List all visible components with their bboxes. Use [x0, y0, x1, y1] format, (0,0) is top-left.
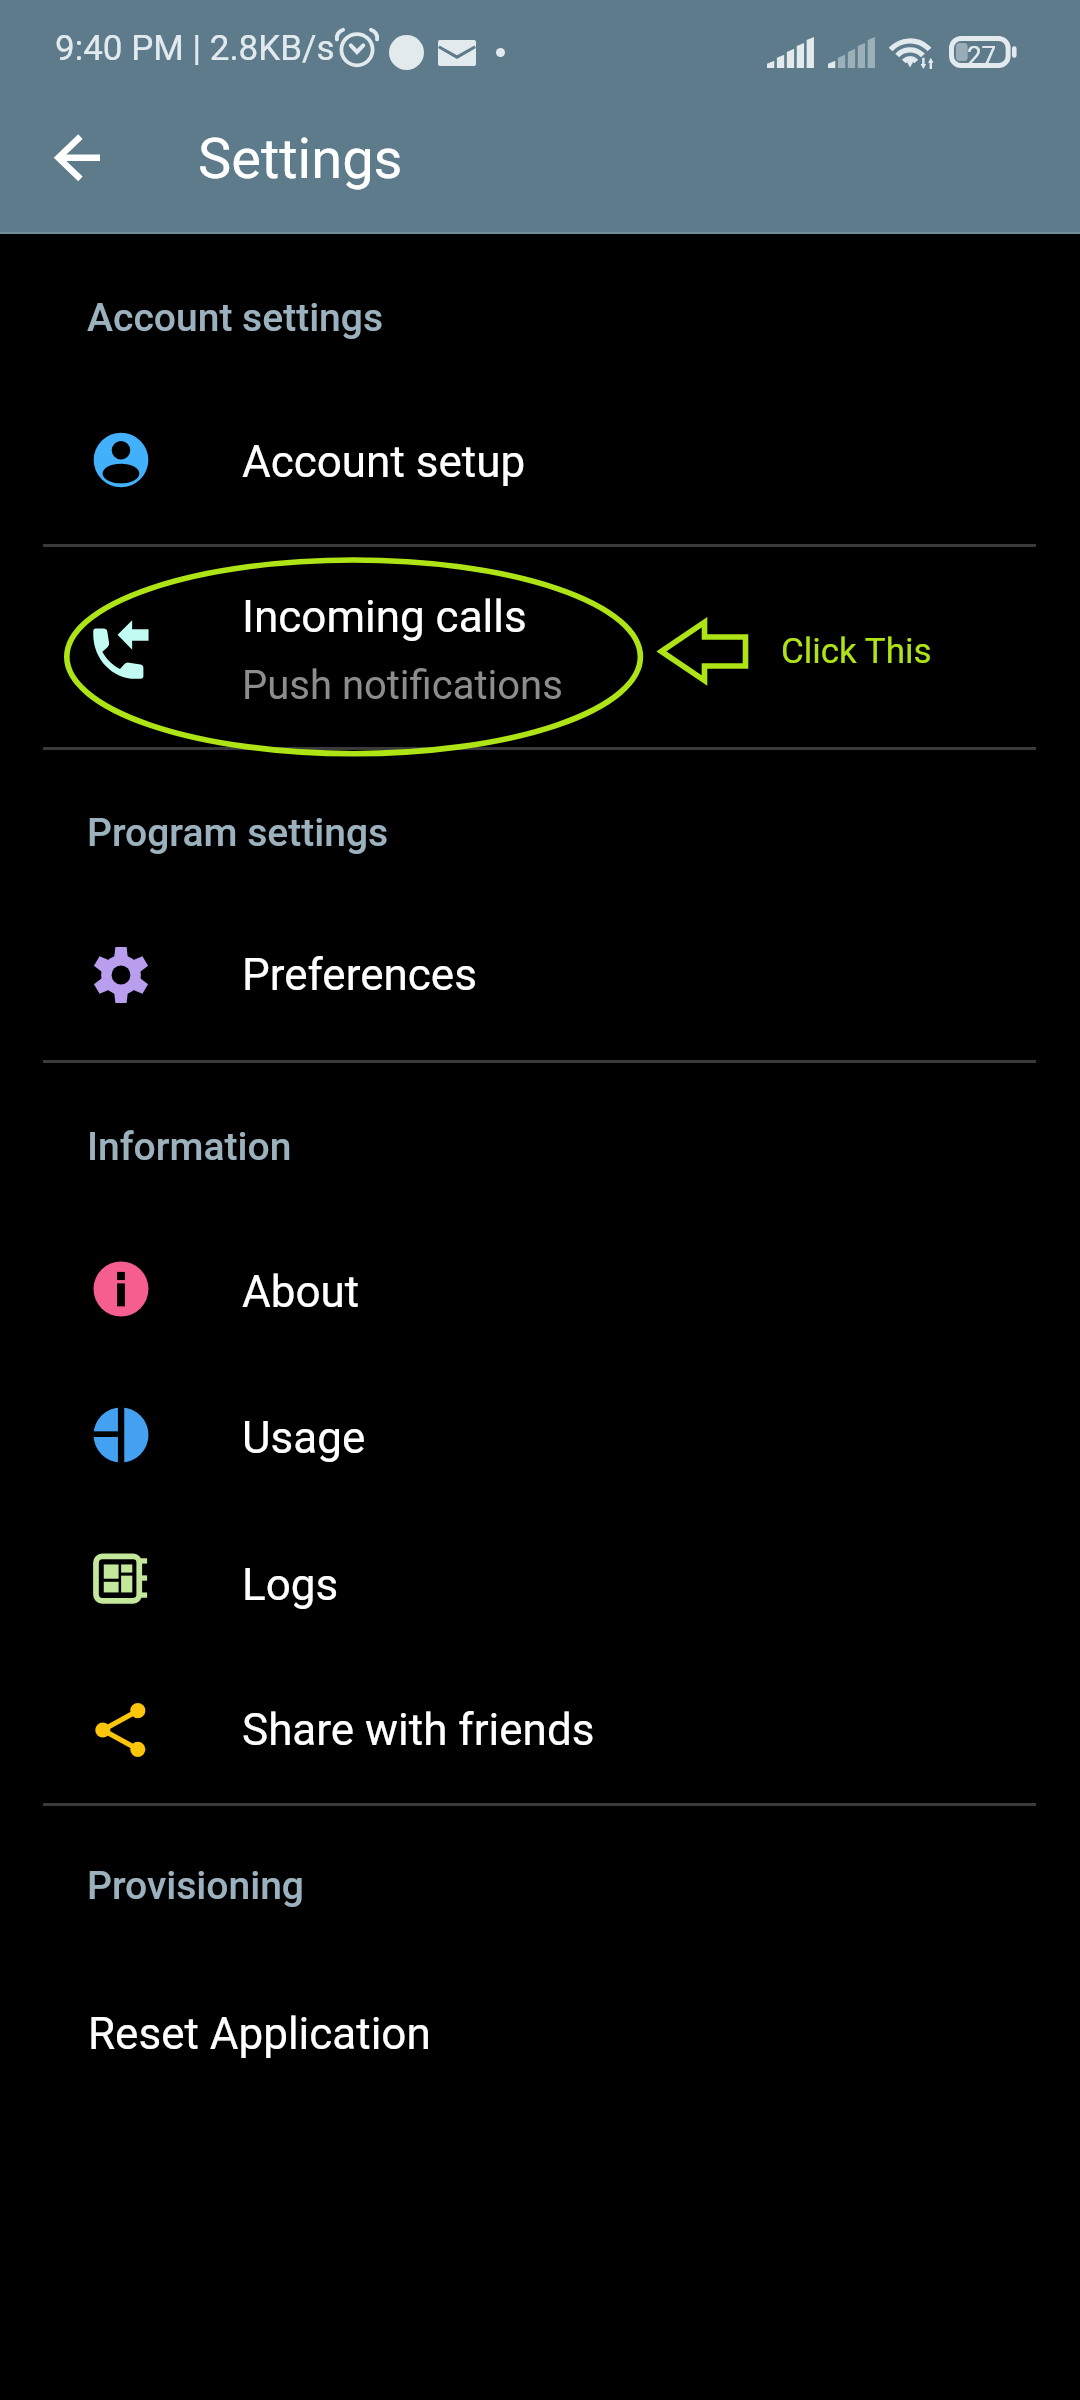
staticText: Share with friends: [242, 1704, 595, 1756]
button[interactable]: Incoming calls: [0, 552, 1080, 752]
staticText: 9:40 PM | 2.8KB/s: [55, 28, 335, 69]
staticText: Provisioning: [87, 1863, 304, 1909]
button[interactable]: Account setup: [0, 390, 1080, 530]
staticText: Information: [87, 1124, 292, 1170]
staticText: Push notifications: [242, 662, 563, 709]
button[interactable]: Reset Application: [0, 1969, 1080, 2099]
staticText: Settings: [198, 126, 403, 192]
button[interactable]: About: [0, 1219, 1080, 1359]
staticText: Incoming calls: [242, 591, 527, 643]
staticText: Account setup: [242, 436, 526, 488]
button[interactable]: Preferences: [0, 905, 1080, 1045]
staticText: About: [242, 1266, 360, 1318]
staticText: Reset Application: [88, 2008, 431, 2060]
staticText: Click This: [781, 631, 932, 672]
staticText: Program settings: [87, 810, 389, 856]
button[interactable]: Usage: [0, 1365, 1080, 1505]
staticText: Logs: [242, 1559, 339, 1611]
staticText: Account settings: [87, 295, 384, 341]
staticText: Usage: [242, 1412, 366, 1464]
staticText: 27: [967, 41, 997, 71]
button[interactable]: Share with friends: [0, 1660, 1080, 1800]
staticText: Preferences: [242, 949, 477, 1001]
button[interactable]: Back: [11, 91, 143, 223]
button[interactable]: Logs: [0, 1509, 1080, 1649]
